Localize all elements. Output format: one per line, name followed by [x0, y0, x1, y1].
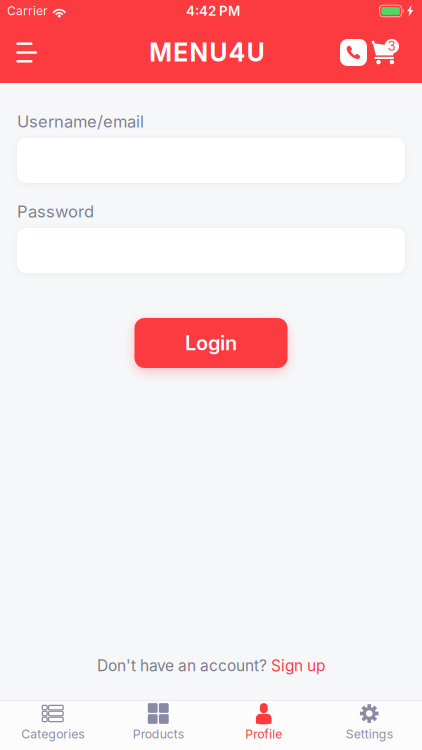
staticText: 3: [388, 39, 396, 54]
button[interactable]: Profile: [211, 700, 316, 750]
button[interactable]: Products: [105, 700, 211, 750]
staticText: Password: [17, 201, 94, 221]
button[interactable]: Menu: [0, 26, 53, 78]
button[interactable]: Call: [338, 26, 369, 78]
staticText: Username/email: [17, 111, 144, 131]
staticText: 4:42 PM: [186, 3, 240, 19]
button[interactable]: Settings: [316, 700, 422, 750]
staticText: Login: [185, 331, 237, 355]
staticText: Categories: [21, 726, 84, 741]
staticText: MENU4U: [149, 38, 265, 67]
button[interactable]: Login: [134, 318, 287, 368]
staticText: Don't have an account?: [97, 656, 271, 675]
button[interactable]: Cart, 3 items: [369, 26, 422, 78]
staticText: Carrier: [7, 4, 48, 18]
button[interactable]: Categories: [0, 700, 105, 750]
staticText: Settings: [346, 726, 393, 741]
staticText: Products: [133, 726, 184, 741]
staticText: Sign up: [271, 656, 325, 675]
staticText: Profile: [245, 726, 282, 741]
button[interactable]: Sign up: [271, 656, 325, 675]
